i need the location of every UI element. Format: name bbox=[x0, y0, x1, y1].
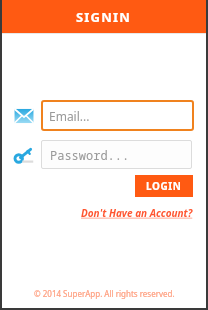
staticText: Password... bbox=[50, 147, 130, 163]
staticText: Don't Have an Account? bbox=[81, 206, 193, 220]
button[interactable]: Password... bbox=[41, 140, 192, 169]
button[interactable]: LOGIN bbox=[135, 175, 193, 197]
other: Password bbox=[13, 144, 35, 166]
button[interactable]: Email... bbox=[41, 100, 194, 131]
other: Email bbox=[13, 105, 35, 127]
button[interactable]: Don't Have an Account? bbox=[80, 205, 194, 221]
staticText: SIGNIN bbox=[76, 8, 132, 26]
staticText: Email... bbox=[49, 108, 90, 124]
staticText: LOGIN bbox=[146, 179, 182, 193]
staticText: © 2014 SuperApp. All rights reserved. bbox=[34, 288, 175, 299]
